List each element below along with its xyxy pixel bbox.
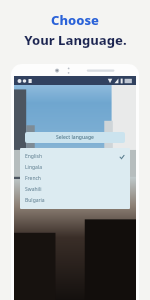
button[interactable]: Bulgaria	[20, 195, 130, 206]
button[interactable]: French	[20, 173, 130, 184]
button[interactable]: Swahili	[20, 184, 130, 195]
staticText: French	[25, 175, 41, 182]
staticText: Select language	[56, 134, 94, 141]
staticText: Lingala	[25, 164, 42, 171]
staticText: English	[25, 153, 43, 160]
button[interactable]: English	[20, 151, 130, 162]
staticText: Your Language.	[24, 31, 127, 49]
other: Selected	[119, 154, 125, 160]
staticText: Choose	[51, 11, 99, 29]
button[interactable]: Select language	[25, 132, 125, 143]
staticText: Swahili	[25, 186, 42, 193]
button[interactable]: Lingala	[20, 162, 130, 173]
staticText: Bulgaria	[25, 197, 45, 204]
